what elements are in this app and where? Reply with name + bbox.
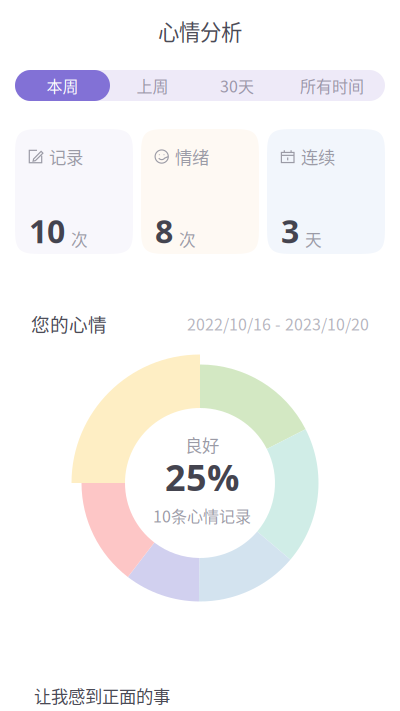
staticText: 3	[281, 209, 299, 253]
staticText: 10条心情记录	[153, 504, 251, 527]
button[interactable]: 连续	[267, 129, 385, 254]
button[interactable]: 上周	[110, 70, 195, 101]
staticText: 情绪	[175, 144, 209, 169]
staticText: 8	[155, 209, 173, 253]
button[interactable]: 本周	[15, 70, 110, 101]
staticText: 本周	[46, 74, 78, 97]
staticText: 所有时间	[300, 74, 364, 97]
staticText: 10	[29, 209, 65, 253]
button[interactable]: 情绪	[141, 129, 259, 254]
staticText: 30天	[220, 74, 254, 97]
staticText: 记录	[49, 144, 83, 169]
button[interactable]: 30天	[195, 70, 279, 101]
staticText: 次	[179, 227, 196, 251]
staticText: 上周	[136, 74, 168, 97]
staticText: 2022/10/16 - 2023/10/20	[187, 312, 369, 335]
staticText: 良好	[185, 432, 219, 457]
button[interactable]: 记录	[15, 129, 133, 254]
staticText: 天	[305, 227, 322, 251]
staticText: 心情分析	[158, 16, 242, 46]
staticText: 25%	[165, 452, 239, 501]
staticText: 您的心情	[31, 310, 107, 337]
staticText: 次	[71, 227, 88, 251]
button[interactable]: 所有时间	[279, 70, 385, 101]
staticText: 让我感到正面的事	[34, 683, 170, 708]
staticText: 连续	[301, 144, 335, 169]
